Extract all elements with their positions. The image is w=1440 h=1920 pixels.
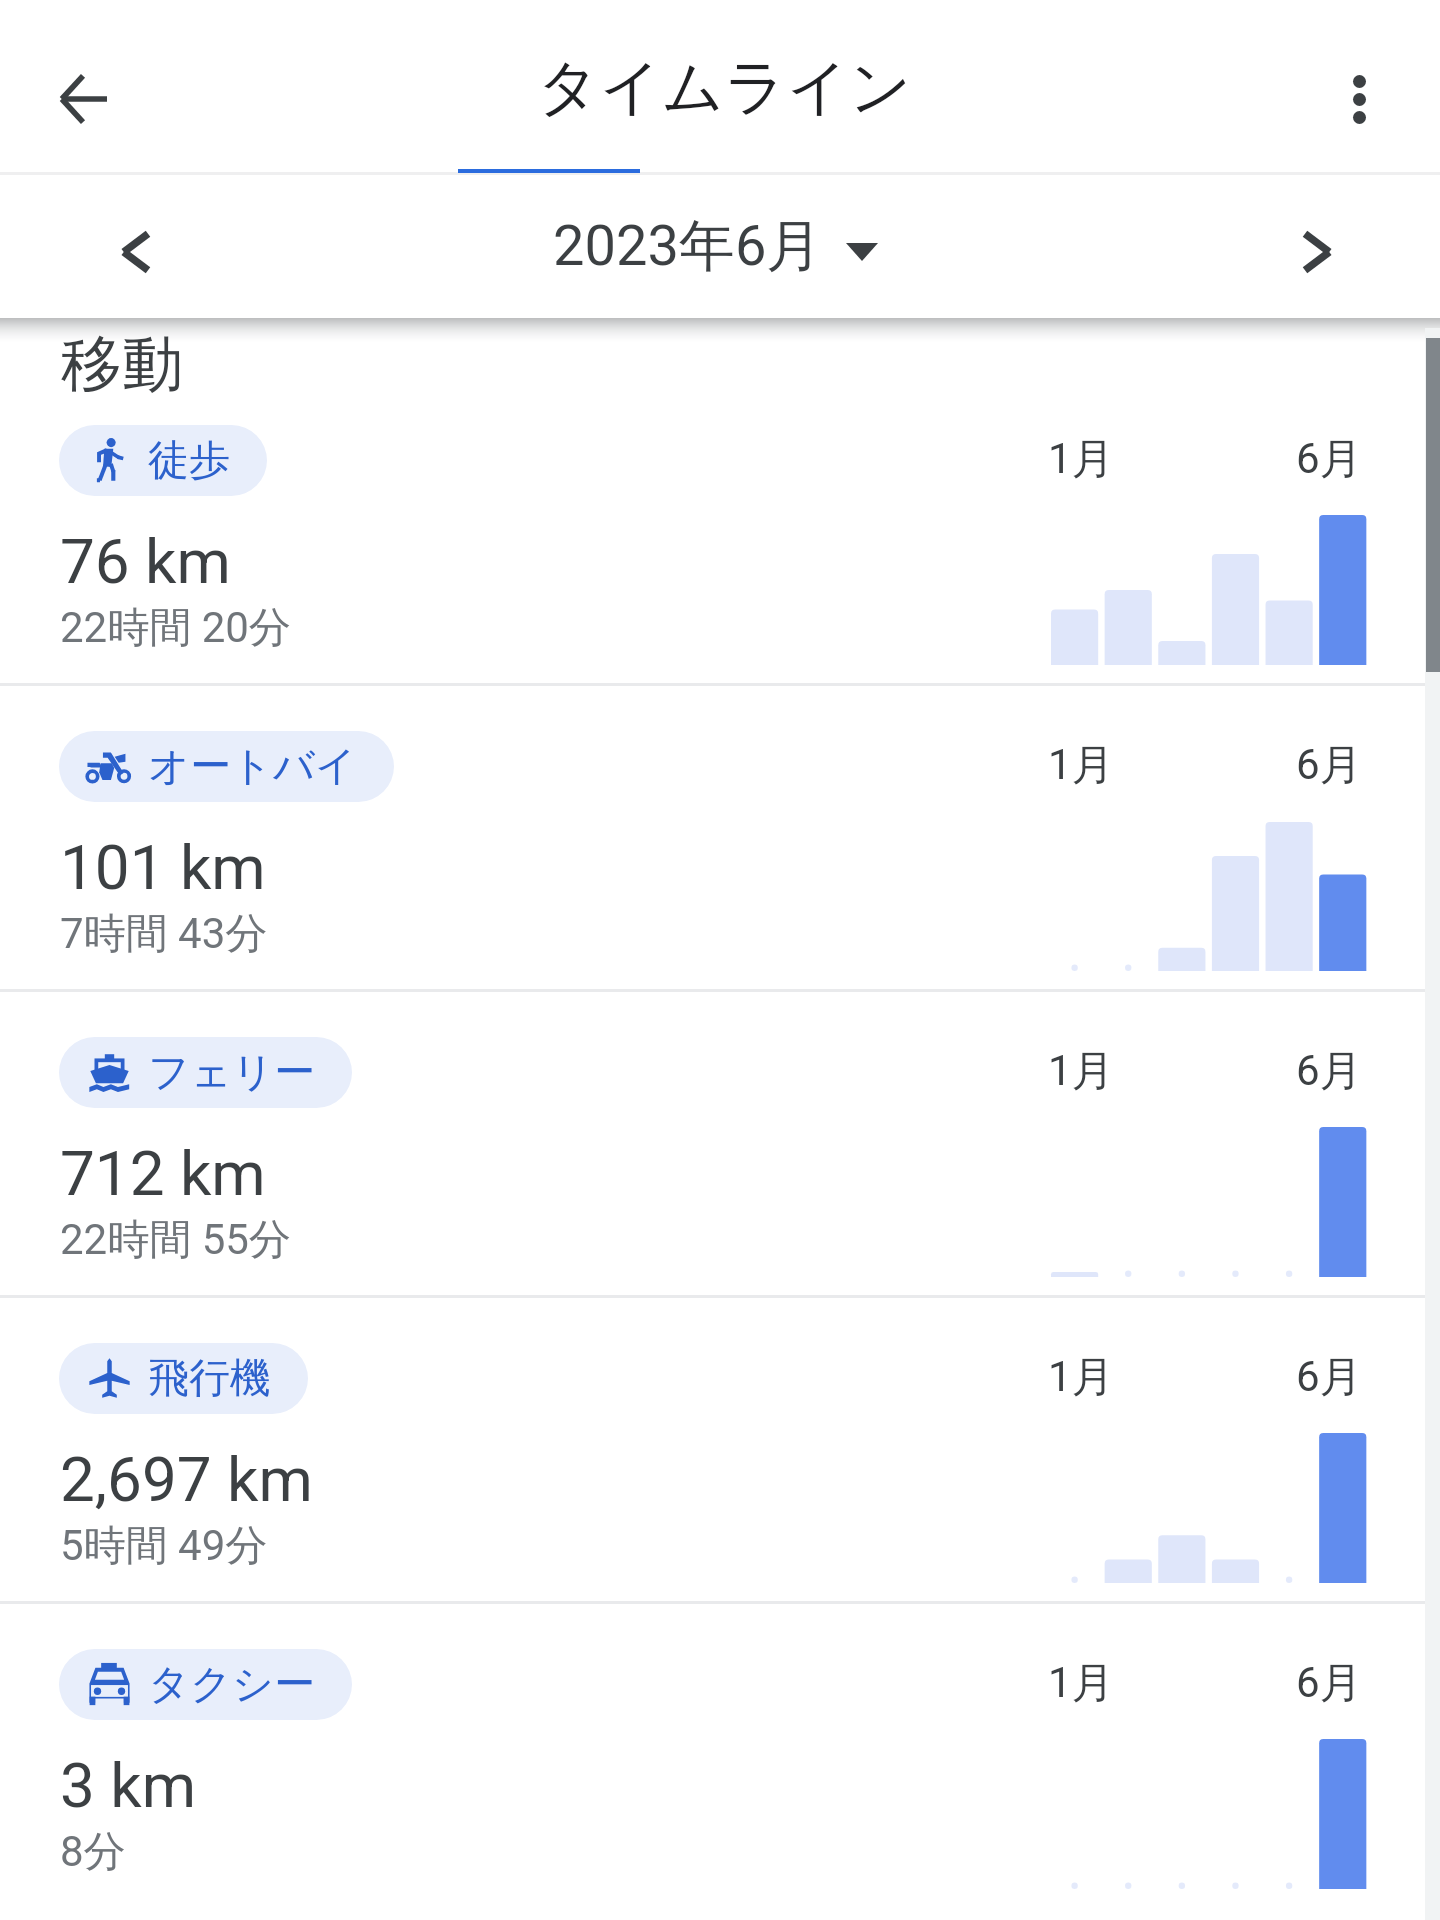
staticText: 2023年6月 bbox=[553, 211, 823, 282]
button[interactable]: 飛行機 bbox=[0, 1343, 1440, 1601]
staticText: 移動 bbox=[61, 326, 183, 403]
button[interactable]: 徒歩 bbox=[59, 425, 267, 496]
staticText: 5時間 49分 bbox=[60, 1520, 268, 1573]
staticText: 3 km bbox=[60, 1749, 197, 1822]
button[interactable]: 徒歩 bbox=[0, 425, 1440, 683]
staticText: 2,697 km bbox=[60, 1443, 313, 1516]
staticText: 1月 bbox=[1048, 1045, 1114, 1098]
staticText: 徒歩 bbox=[148, 435, 230, 487]
button[interactable]: フェリー bbox=[0, 1037, 1440, 1295]
staticText: 6月 bbox=[1296, 1045, 1362, 1098]
button[interactable]: フェリー bbox=[59, 1037, 352, 1108]
staticText: フェリー bbox=[148, 1047, 315, 1099]
staticText: 22時間 20分 bbox=[60, 602, 291, 655]
staticText: 1月 bbox=[1048, 1351, 1114, 1404]
button[interactable]: タクシー bbox=[0, 1649, 1440, 1907]
staticText: 6月 bbox=[1296, 739, 1362, 792]
button[interactable]: 飛行機 bbox=[59, 1343, 308, 1414]
staticText: 6月 bbox=[1296, 433, 1362, 486]
staticText: 1月 bbox=[1048, 739, 1114, 792]
staticText: 101 km bbox=[60, 831, 266, 904]
staticText: 飛行機 bbox=[148, 1353, 271, 1405]
staticText: 22時間 55分 bbox=[60, 1214, 291, 1267]
staticText: 1月 bbox=[1048, 433, 1114, 486]
staticText: タクシー bbox=[148, 1659, 315, 1711]
button[interactable]: Back bbox=[36, 52, 130, 146]
staticText: オートバイ bbox=[148, 741, 357, 793]
staticText: 6月 bbox=[1296, 1351, 1362, 1404]
button[interactable]: Previous month bbox=[86, 204, 181, 299]
staticText: タイムライン bbox=[537, 49, 912, 126]
staticText: 712 km bbox=[60, 1137, 266, 1210]
staticText: 1月 bbox=[1048, 1657, 1114, 1710]
button[interactable]: 2023年6月 bbox=[553, 190, 878, 302]
staticText: 76 km bbox=[60, 525, 231, 598]
staticText: 6月 bbox=[1296, 1657, 1362, 1710]
staticText: 7時間 43分 bbox=[60, 908, 268, 961]
button[interactable]: オートバイ bbox=[0, 731, 1440, 989]
staticText: 8分 bbox=[60, 1826, 126, 1879]
button[interactable]: Next month bbox=[1271, 204, 1366, 299]
button[interactable]: タクシー bbox=[59, 1649, 352, 1720]
button[interactable]: More options bbox=[1312, 52, 1406, 146]
button[interactable]: オートバイ bbox=[59, 731, 394, 802]
